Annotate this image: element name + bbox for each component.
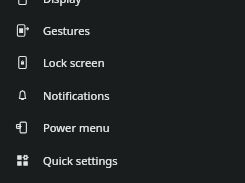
button[interactable]: Notifications: [0, 79, 245, 111]
button[interactable]: Display: [0, 0, 245, 14]
button[interactable]: Quick settings: [0, 144, 245, 176]
staticText: Gestures: [43, 23, 90, 38]
button[interactable]: Lock screen: [0, 46, 245, 78]
staticText: Quick settings: [43, 153, 118, 168]
button[interactable]: Gestures: [0, 14, 245, 46]
button[interactable]: Power menu: [0, 111, 245, 143]
staticText: Power menu: [43, 120, 110, 135]
other: Display: [15, 0, 30, 6]
staticText: Notifications: [43, 88, 110, 103]
staticText: Display: [43, 0, 82, 6]
staticText: Lock screen: [43, 55, 105, 70]
